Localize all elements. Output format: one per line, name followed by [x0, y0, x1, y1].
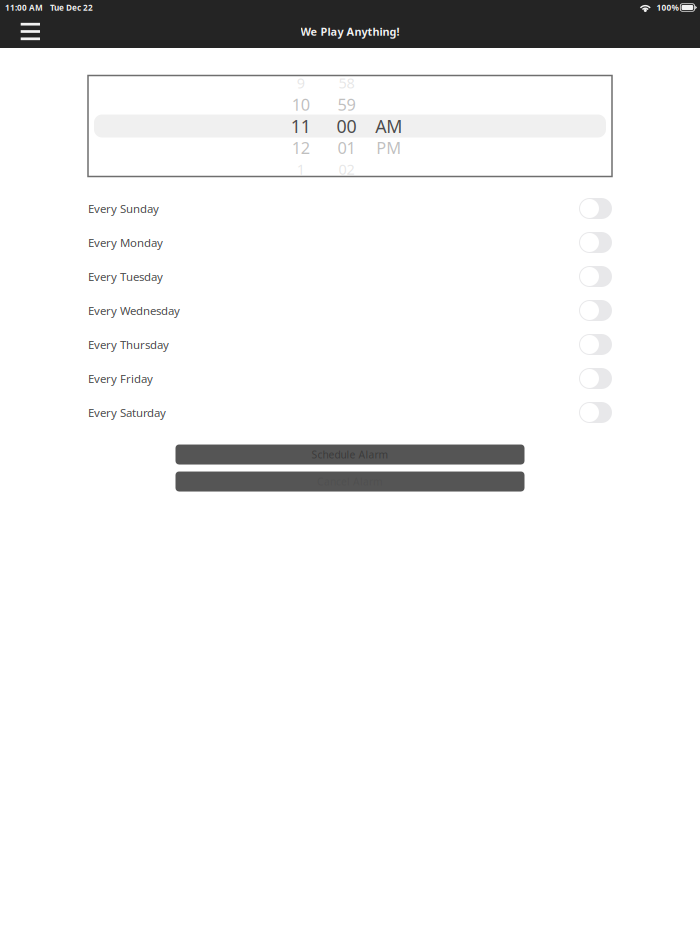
staticText: 01 — [338, 136, 356, 159]
staticText: Every Thursday — [88, 337, 169, 352]
staticText: Every Monday — [88, 235, 163, 250]
staticText: 02 — [339, 159, 355, 179]
button[interactable]: Cancel Alarm — [175, 471, 524, 491]
staticText: Every Wednesday — [88, 303, 180, 318]
staticText: AM — [375, 114, 402, 138]
button[interactable]: Menu — [0, 15, 60, 48]
staticText: Every Sunday — [88, 201, 159, 216]
staticText: Schedule Alarm — [311, 447, 388, 461]
button[interactable]: Every Friday — [88, 361, 612, 395]
button[interactable]: Every Wednesday — [88, 293, 612, 327]
staticText: 00 — [337, 114, 357, 138]
staticText: 100% — [656, 2, 678, 13]
button[interactable]: Every Thursday — [88, 327, 612, 361]
staticText: 58 — [339, 73, 355, 93]
button[interactable]: Every Tuesday — [88, 259, 612, 293]
staticText: 1 — [297, 159, 305, 179]
button[interactable]: Every Monday — [88, 225, 612, 259]
button[interactable]: Every Saturday — [88, 395, 612, 429]
staticText: PM — [376, 136, 401, 159]
staticText: Tue Dec 22 — [50, 2, 93, 13]
staticText: Every Friday — [88, 371, 153, 386]
staticText: Every Saturday — [88, 405, 166, 420]
staticText: 11:00 AM — [5, 2, 43, 13]
staticText: We Play Anything! — [300, 24, 399, 39]
staticText: 11 — [291, 114, 311, 138]
staticText: 9 — [297, 73, 305, 93]
staticText: Every Tuesday — [88, 269, 163, 284]
button[interactable]: Schedule Alarm — [175, 444, 524, 464]
button[interactable]: Every Sunday — [88, 191, 612, 225]
staticText: 59 — [338, 93, 356, 115]
staticText: 10 — [292, 93, 310, 115]
staticText: 12 — [292, 136, 310, 159]
